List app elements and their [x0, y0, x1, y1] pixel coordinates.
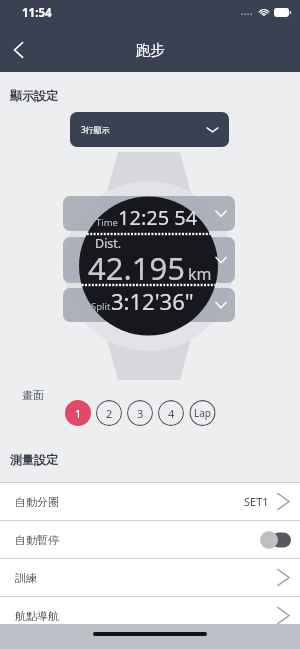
button[interactable]: 航點導航 [0, 597, 300, 634]
button[interactable]: 3行顯示 [70, 112, 229, 147]
button[interactable]: 訓練 [0, 559, 300, 596]
staticText: 3 [137, 406, 144, 421]
staticText: 畫面 [22, 388, 44, 402]
staticText: Dist. [95, 235, 122, 252]
staticText: 4 [168, 406, 175, 421]
staticText: 12:25 54 [118, 204, 198, 231]
button[interactable]: 1 [65, 400, 91, 426]
staticText: 3行顯示 [81, 124, 110, 135]
button[interactable]: 2 [96, 400, 122, 426]
button[interactable]: Lap [189, 400, 216, 426]
button[interactable]: 3 [127, 400, 153, 426]
staticText: 顯示設定 [10, 88, 58, 103]
button[interactable]: 4 [158, 400, 184, 426]
staticText: 2 [106, 406, 113, 421]
staticText: Lap [194, 406, 211, 420]
button[interactable]: 自動暫停 [0, 521, 300, 558]
staticText: 1 [75, 406, 82, 421]
staticText: 自動暫停 [15, 533, 59, 547]
button[interactable]: Select data field [63, 288, 235, 322]
staticText: Split [91, 300, 111, 313]
staticText: 3:12'36" [111, 286, 194, 316]
button[interactable]: 自動分圈 [0, 483, 300, 520]
staticText: 自動分圈 [15, 495, 59, 509]
staticText: 跑步 [136, 41, 165, 59]
staticText: 42.195 [88, 247, 185, 289]
staticText: 11:54 [22, 5, 52, 21]
staticText: Time [96, 216, 118, 229]
staticText: 航點導航 [15, 609, 59, 623]
staticText: 測量設定 [10, 452, 58, 467]
button[interactable]: Select data field [63, 196, 235, 231]
staticText: km [188, 263, 212, 285]
staticText: 訓練 [15, 571, 37, 585]
button[interactable]: Select data field [63, 237, 235, 283]
button[interactable]: Back [0, 28, 44, 72]
staticText: SET1 [244, 494, 269, 509]
